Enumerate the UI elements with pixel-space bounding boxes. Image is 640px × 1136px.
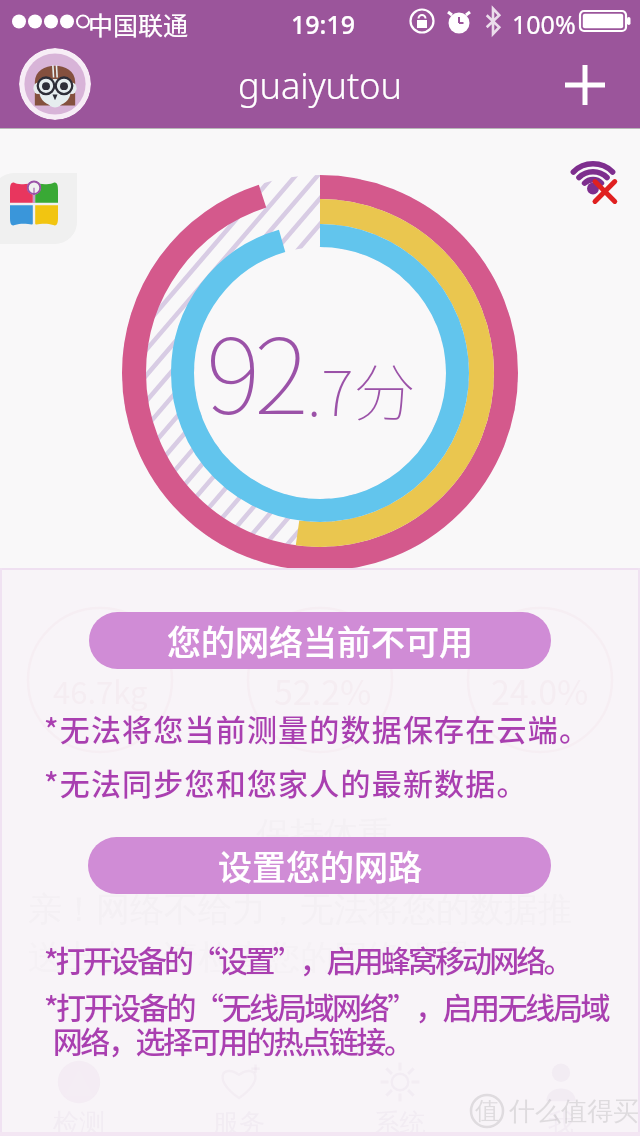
staticText: 中国联通 <box>88 6 189 42</box>
staticText: *打开设备的“设置”，启用蜂窝移动网络。 <box>44 937 571 980</box>
button[interactable]: No network <box>560 144 626 210</box>
button[interactable]: 服务 <box>169 1055 309 1136</box>
staticText: 我 <box>548 1107 574 1136</box>
staticText: .7分 <box>307 344 416 434</box>
staticText: 46.7kg <box>53 668 148 713</box>
button[interactable]: Add <box>561 61 609 109</box>
staticText: guaiyutou <box>238 61 402 110</box>
staticText: 检测 <box>53 1107 105 1136</box>
button[interactable]: Profile <box>19 48 91 120</box>
staticText: 值 <box>475 1096 499 1126</box>
staticText: 设置您的网路 <box>218 841 422 890</box>
staticText: 保持体重 <box>256 813 392 856</box>
staticText: 19:19 <box>291 7 356 41</box>
staticText: 100% <box>512 7 576 41</box>
button[interactable]: 我 <box>491 1055 631 1136</box>
button[interactable]: 您的网络当前不可用 <box>89 612 551 669</box>
staticText: 92 <box>206 293 303 444</box>
staticText: 亲！网络不给力，无法将您的数据推 <box>28 888 572 931</box>
staticText: 送出去，请检查您的网络设置。 <box>28 936 504 979</box>
staticText: 24.0% <box>491 666 589 715</box>
staticText: *无法同步您和您家人的最新数据。 <box>44 760 528 803</box>
staticText: 52.2% <box>274 666 372 715</box>
staticText: *打开设备的“无线局域网络”，启用无线局域 网络，选择可用的热点链接。 <box>44 984 609 1062</box>
staticText: 什么值得买 <box>509 1095 639 1128</box>
button[interactable]: App <box>0 173 77 244</box>
staticText: 系统 <box>374 1107 426 1136</box>
button[interactable]: 设置您的网路 <box>88 837 551 894</box>
staticText: *无法将您当前测量的数据保存在云端。 <box>44 706 591 749</box>
button[interactable]: 检测 <box>9 1055 149 1136</box>
staticText: 服务 <box>213 1107 265 1136</box>
staticText: 您的网络当前不可用 <box>167 616 473 665</box>
button[interactable]: 系统 <box>330 1055 470 1136</box>
